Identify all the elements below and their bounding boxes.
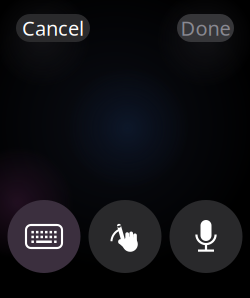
button[interactable]: Done: [177, 14, 234, 42]
staticText: Done: [180, 15, 230, 41]
button[interactable]: Dictation: [169, 200, 242, 273]
button[interactable]: Cancel: [16, 14, 90, 42]
button[interactable]: Keyboard: [7, 200, 80, 273]
staticText: Cancel: [22, 15, 84, 41]
button[interactable]: Scribble: [88, 200, 161, 273]
